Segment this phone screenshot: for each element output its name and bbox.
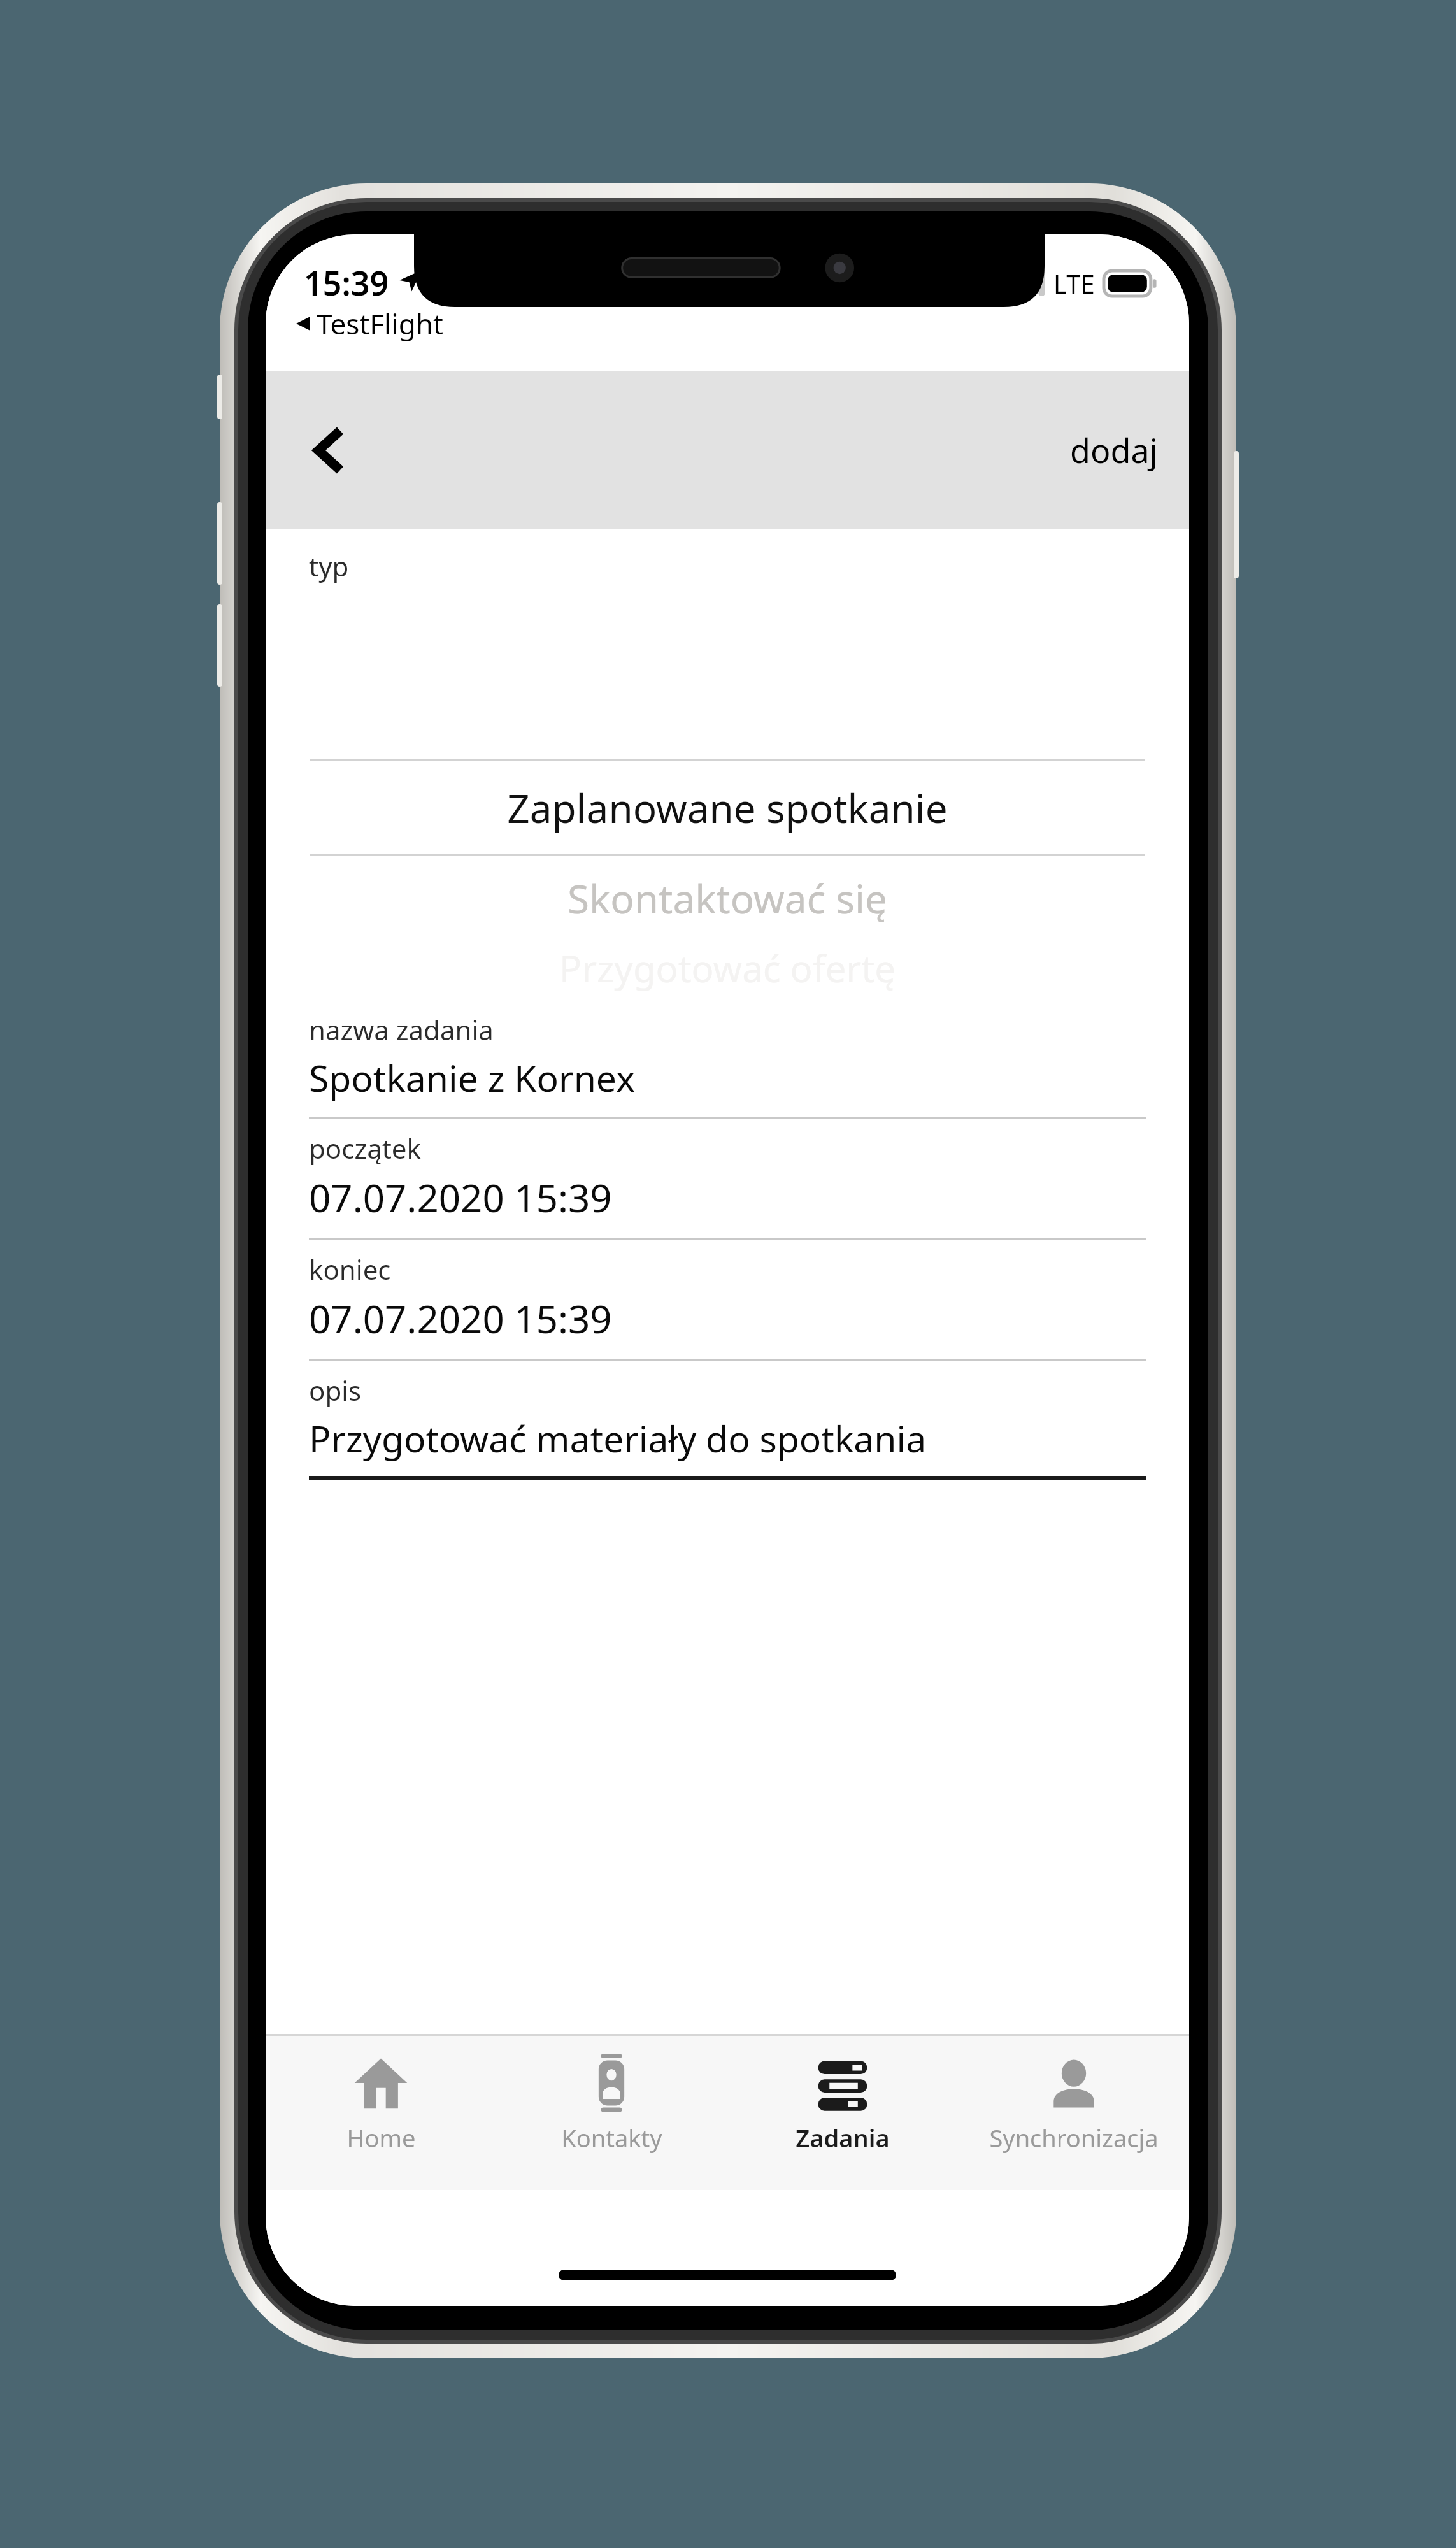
- button[interactable]: Synchronizacja: [958, 2036, 1189, 2190]
- button[interactable]: Back: [291, 412, 368, 489]
- staticText: początek: [309, 1130, 421, 1166]
- staticText: opis: [309, 1372, 362, 1408]
- button[interactable]: Kontakty: [496, 2036, 727, 2190]
- button[interactable]: dodaj: [1052, 413, 1176, 487]
- staticText: TestFlight: [317, 304, 443, 343]
- staticText: dodaj: [1070, 427, 1159, 473]
- staticText: Kontakty: [561, 2121, 662, 2154]
- staticText: Skontaktować się: [567, 871, 887, 925]
- staticText: 07.07.2020 15:39: [309, 1171, 612, 1224]
- button[interactable]: opis: [266, 1361, 1189, 1480]
- button[interactable]: Home: [266, 2036, 496, 2190]
- button[interactable]: Zaplanowane spotkanie: [266, 586, 1189, 892]
- staticText: typ: [309, 548, 349, 584]
- staticText: Zaplanowane spotkanie: [507, 781, 948, 834]
- button[interactable]: koniec: [266, 1240, 1189, 1361]
- staticText: 07.07.2020 15:39: [309, 1292, 612, 1345]
- staticText: Spotkanie z Kornex: [309, 1053, 636, 1103]
- staticText: nazwa zadania: [309, 1012, 494, 1048]
- staticText: koniec: [309, 1251, 391, 1287]
- staticText: Przygotować materiały do spotkania: [309, 1414, 927, 1463]
- staticText: Synchronizacja: [989, 2121, 1159, 2154]
- button[interactable]: Zadania: [727, 2036, 958, 2190]
- staticText: Przygotować ofertę: [559, 943, 896, 993]
- button[interactable]: nazwa zadania: [266, 1000, 1189, 1119]
- staticText: Home: [346, 2121, 416, 2154]
- button[interactable]: początek: [266, 1119, 1189, 1240]
- staticText: LTE: [1053, 266, 1095, 301]
- staticText: Zadania: [796, 2121, 890, 2154]
- staticText: 15:39: [304, 260, 389, 305]
